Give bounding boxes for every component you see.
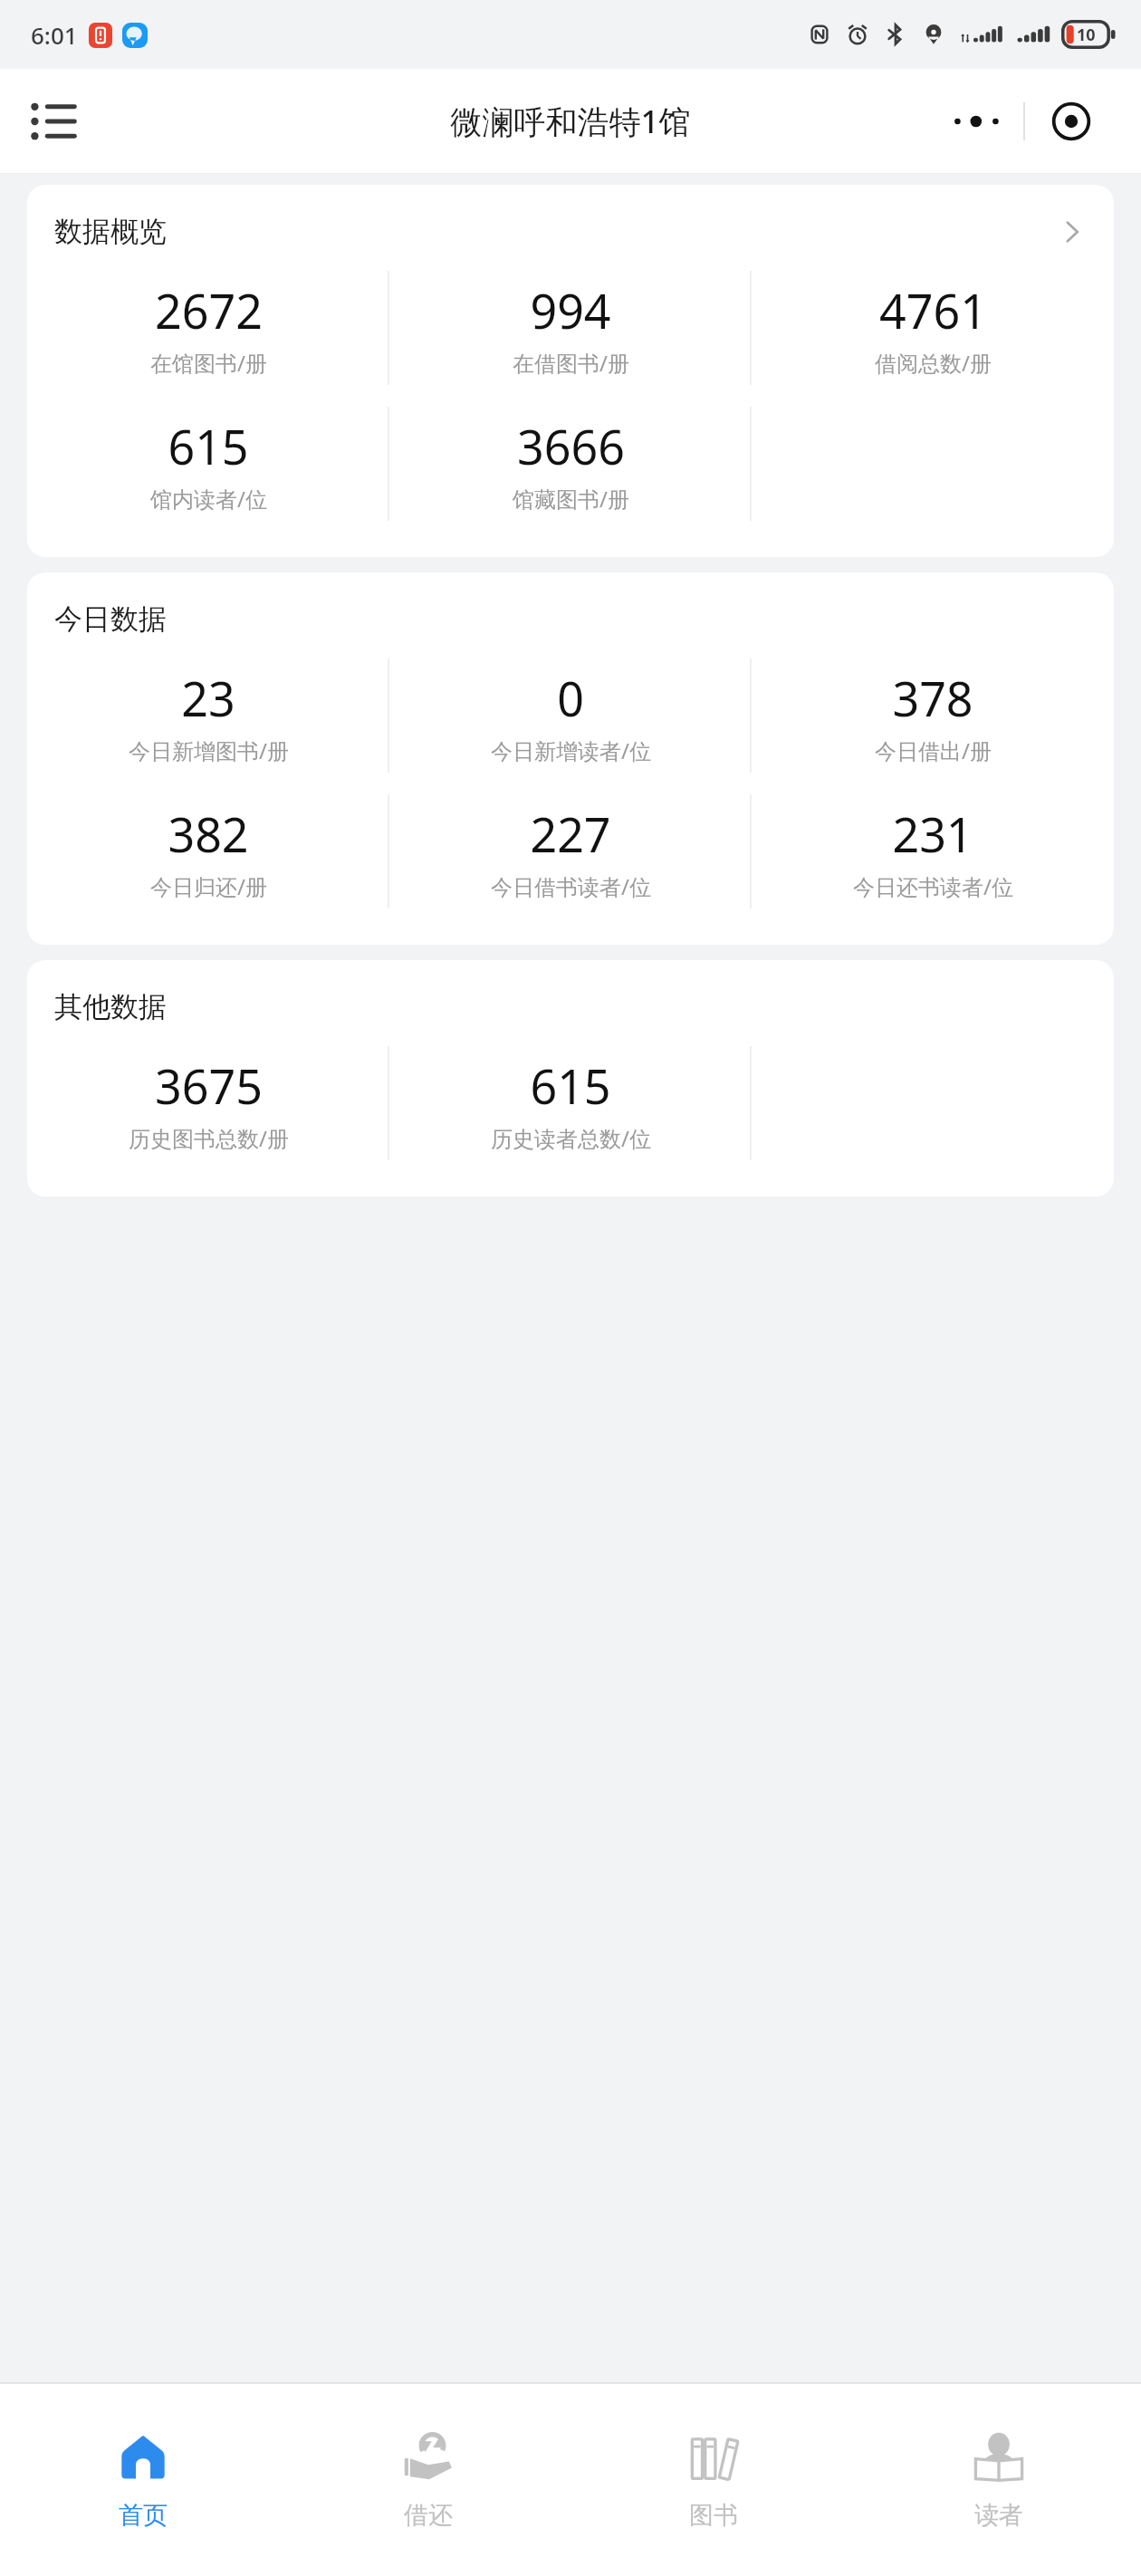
staticText: 615 [168,414,249,478]
button[interactable]: 读者 [856,2384,1141,2576]
staticText: 数据概览 [54,214,167,249]
staticText: 首页 [119,2500,168,2531]
staticText: 历史图书总数/册 [129,1123,289,1153]
staticText: 在借图书/册 [513,348,629,378]
button[interactable]: 今日数据 [27,572,1114,945]
staticText: 今日新增图书/册 [129,735,289,765]
staticText: 10 [1077,24,1096,46]
button[interactable]: 首页 [0,2384,285,2576]
staticText: 读者 [974,2500,1023,2531]
staticText: 2672 [155,278,263,342]
staticText: 今日还书读者/位 [853,871,1013,901]
staticText: 994 [530,278,611,342]
staticText: 借还 [404,2500,453,2531]
staticText: 382 [168,802,249,866]
staticText: 今日归还/册 [150,871,267,901]
staticText: 微澜呼和浩特1馆 [450,100,691,143]
staticText: 231 [892,802,973,866]
staticText: 615 [530,1053,611,1118]
staticText: 今日新增读者/位 [491,735,651,765]
button[interactable]: 数据概览 [27,185,1114,557]
staticText: 今日借书读者/位 [491,871,651,901]
staticText: 借阅总数/册 [875,348,992,378]
staticText: 馆藏图书/册 [513,484,629,514]
button[interactable]: 图书 [570,2384,856,2576]
staticText: 0 [557,666,584,730]
staticText: 3675 [155,1053,263,1118]
staticText: 历史读者总数/位 [491,1123,651,1153]
button[interactable]: 其他数据 [27,960,1114,1197]
staticText: 其他数据 [54,989,167,1024]
staticText: 今日借出/册 [875,735,992,765]
staticText: 馆内读者/位 [150,484,267,514]
staticText: 6:01 [31,19,78,51]
staticText: 图书 [689,2500,738,2531]
staticText: 今日数据 [54,601,167,637]
staticText: 4761 [879,278,987,342]
staticText: 在馆图书/册 [150,348,267,378]
button[interactable]: 借还 [285,2384,570,2576]
staticText: 227 [530,802,611,866]
staticText: 3666 [517,414,625,478]
staticText: 23 [181,666,235,730]
button[interactable]: Menu [20,87,89,156]
staticText: 378 [892,666,973,730]
button[interactable]: Mini program menu [931,90,1117,153]
